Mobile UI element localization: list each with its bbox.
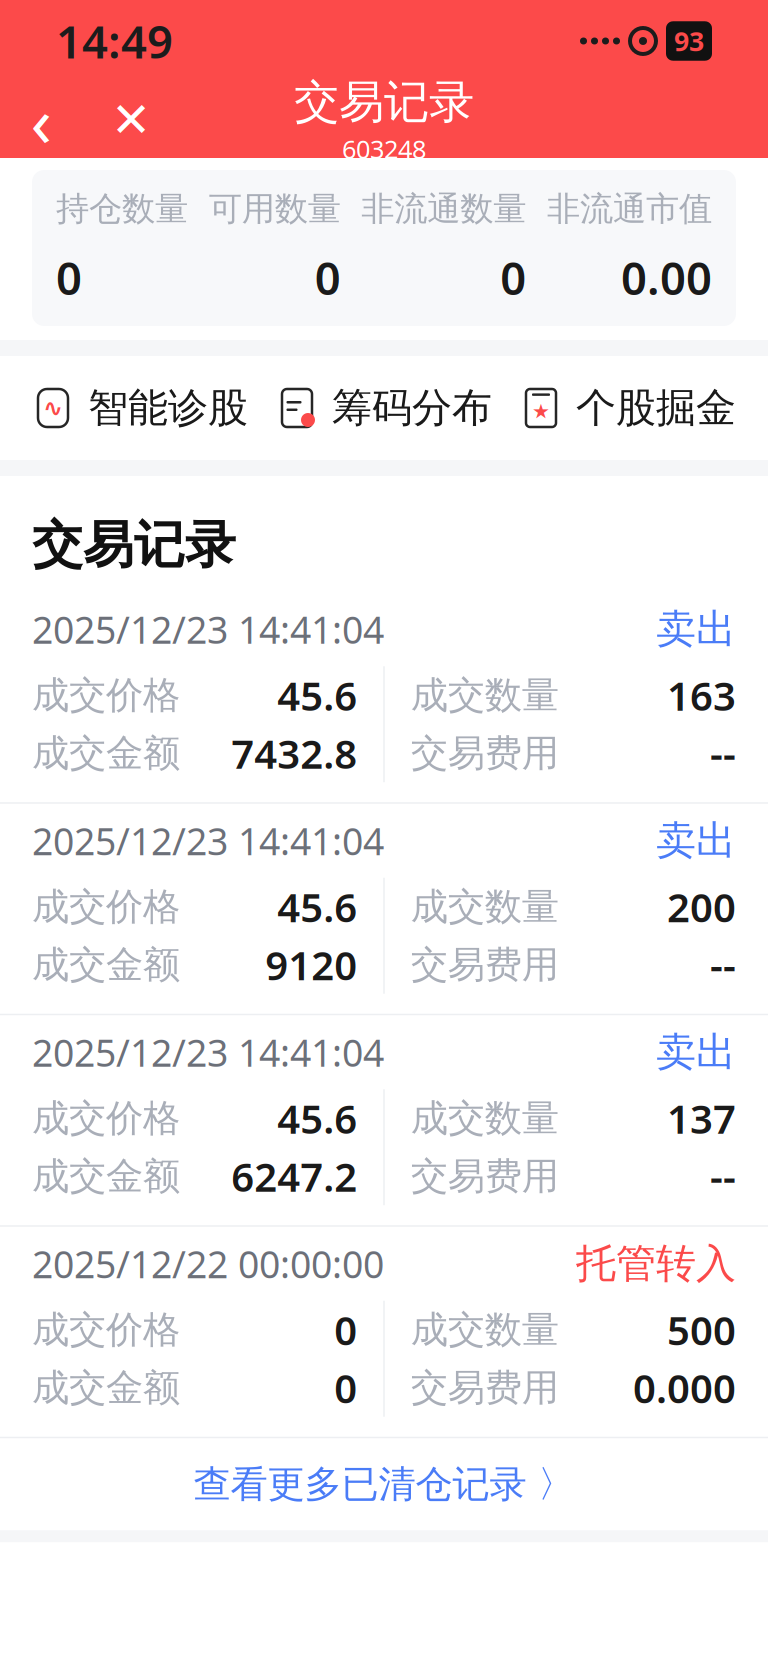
staticText: 可用数量 bbox=[209, 188, 341, 229]
staticText: 卖出 bbox=[656, 605, 736, 654]
staticText: ★ bbox=[532, 400, 550, 423]
staticText: 托管转入 bbox=[576, 1239, 736, 1288]
staticText: 成交金额 bbox=[32, 730, 180, 776]
staticText: 成交金额 bbox=[32, 1153, 180, 1199]
staticText: 45.6 bbox=[277, 669, 357, 722]
staticText: 0 bbox=[500, 247, 526, 308]
staticText: ‹ bbox=[30, 74, 51, 166]
staticText: ✕ bbox=[111, 93, 151, 147]
staticText: 6247.2 bbox=[231, 1150, 357, 1203]
button[interactable]: Back bbox=[18, 92, 64, 148]
staticText: 2025/12/23 14:41:04 bbox=[32, 604, 384, 654]
staticText: 137 bbox=[667, 1092, 736, 1145]
staticText: 0 bbox=[334, 1361, 357, 1414]
staticText: 0 bbox=[334, 1303, 357, 1356]
staticText: 交易费用 bbox=[411, 730, 559, 776]
staticText: 93 bbox=[674, 23, 704, 59]
staticText: 2025/12/23 14:41:04 bbox=[32, 1027, 384, 1077]
staticText: 成交数量 bbox=[411, 672, 559, 718]
staticText: -- bbox=[710, 727, 736, 780]
button[interactable]: 查看更多已清仓记录 〉 bbox=[0, 1438, 768, 1530]
button[interactable]: ★ bbox=[506, 356, 750, 460]
staticText: 卖出 bbox=[656, 1028, 736, 1077]
staticText: 7432.8 bbox=[231, 727, 357, 780]
staticText: 14:49 bbox=[56, 11, 173, 71]
staticText: 交易记录 bbox=[32, 514, 236, 576]
staticText: 筹码分布 bbox=[332, 383, 492, 432]
staticText: 成交数量 bbox=[411, 884, 559, 930]
button[interactable]: Close bbox=[108, 92, 154, 148]
staticText: 9120 bbox=[265, 938, 357, 991]
staticText: 非流通数量 bbox=[361, 188, 526, 229]
button[interactable]: ∿ bbox=[18, 356, 262, 460]
staticText: 成交数量 bbox=[411, 1095, 559, 1141]
staticText: 2025/12/23 14:41:04 bbox=[32, 816, 384, 865]
staticText: 交易记录 bbox=[294, 74, 474, 130]
staticText: 成交价格 bbox=[32, 1307, 180, 1353]
staticText: -- bbox=[710, 938, 736, 991]
staticText: 成交数量 bbox=[411, 1307, 559, 1353]
staticText: 0 bbox=[315, 247, 341, 308]
staticText: 个股掘金 bbox=[576, 383, 736, 432]
staticText: 交易费用 bbox=[411, 1153, 559, 1199]
staticText: 成交金额 bbox=[32, 942, 180, 988]
staticText: ∿ bbox=[43, 394, 63, 422]
staticText: 45.6 bbox=[277, 1092, 357, 1145]
staticText: 2025/12/22 00:00:00 bbox=[32, 1239, 384, 1288]
staticText: 交易费用 bbox=[411, 942, 559, 988]
staticText: 200 bbox=[667, 880, 736, 933]
staticText: 成交价格 bbox=[32, 1095, 180, 1141]
staticText: 500 bbox=[667, 1303, 736, 1356]
staticText: 0.000 bbox=[633, 1361, 736, 1414]
staticText: 成交价格 bbox=[32, 884, 180, 930]
staticText: 45.6 bbox=[277, 880, 357, 933]
staticText: 查看更多已清仓记录 〉 bbox=[193, 1461, 574, 1507]
staticText: 0 bbox=[56, 247, 82, 308]
staticText: 非流通市值 bbox=[547, 188, 712, 229]
staticText: 智能诊股 bbox=[88, 383, 248, 432]
staticText: 603248 bbox=[342, 132, 426, 166]
staticText: 持仓数量 bbox=[56, 188, 188, 229]
staticText: 0.00 bbox=[621, 247, 712, 308]
button[interactable]: 筹码分布 bbox=[262, 356, 506, 460]
staticText: 成交金额 bbox=[32, 1365, 180, 1411]
staticText: -- bbox=[710, 1150, 736, 1203]
staticText: 卖出 bbox=[656, 816, 736, 865]
staticText: 交易费用 bbox=[411, 1365, 559, 1411]
staticText: 成交价格 bbox=[32, 672, 180, 718]
staticText: 163 bbox=[667, 669, 736, 722]
